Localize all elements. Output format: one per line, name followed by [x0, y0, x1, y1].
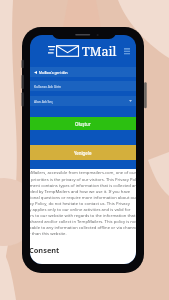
button[interactable]: Yenigele — [30, 145, 136, 160]
staticText: Consent — [30, 245, 60, 255]
staticText: Alan Adı Seç — [34, 99, 53, 103]
staticText: Yenigele — [74, 150, 92, 156]
staticText: TempMailers, accessible from tempmailers… — [30, 170, 136, 236]
staticText: Oluştur — [75, 121, 91, 127]
staticText: Kullanıcı Adı Girin — [34, 84, 62, 88]
button[interactable]: Mailbox'a geri dön — [30, 67, 136, 77]
button[interactable]: Alan Adı Seç — [30, 96, 136, 106]
staticText: Mailbox'a geri dön — [39, 70, 68, 74]
button[interactable]: Menu — [124, 44, 136, 58]
button[interactable]: Kullanıcı Adı Girin — [30, 81, 136, 91]
staticText: TMail — [82, 43, 117, 60]
button[interactable]: Oluştur — [30, 117, 136, 130]
